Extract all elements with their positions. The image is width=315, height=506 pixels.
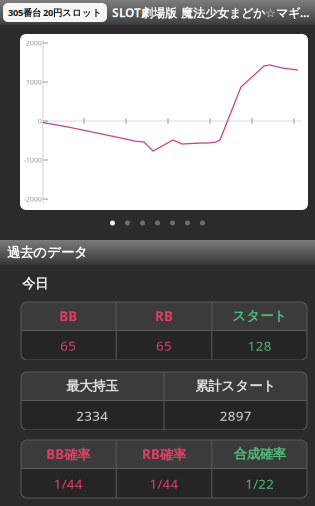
staticText: BB確率 xyxy=(46,445,90,463)
staticText: 1/44 xyxy=(149,475,178,492)
staticText: 1/44 xyxy=(54,475,83,492)
staticText: 128 xyxy=(248,337,272,354)
staticText: RB確率 xyxy=(142,445,186,463)
staticText: 65 xyxy=(60,337,76,354)
staticText: -1000 xyxy=(24,156,42,164)
staticText: 0 xyxy=(38,117,42,125)
staticText: BB xyxy=(59,307,77,325)
staticText: RB xyxy=(155,307,173,325)
staticText: 1/22 xyxy=(245,475,274,492)
staticText: 最大持玉 xyxy=(66,378,118,394)
staticText: スタート xyxy=(232,308,287,324)
button[interactable]: 305番台 20円スロット xyxy=(3,3,107,22)
staticText: 305番台 20円スロット xyxy=(8,6,102,19)
staticText: SLOT劇場版 魔法少女まどか☆マギカ[前編 xyxy=(112,4,315,20)
staticText: 2897 xyxy=(220,407,252,424)
staticText: 2000 xyxy=(26,39,42,47)
staticText: 過去のデータ xyxy=(7,244,88,261)
staticText: 今日 xyxy=(22,275,48,292)
staticText: 合成確率 xyxy=(234,446,286,462)
staticText: -2000 xyxy=(24,195,42,203)
staticText: 2334 xyxy=(76,407,108,424)
staticText: 65 xyxy=(156,337,172,354)
staticText: 累計スタート xyxy=(195,378,276,394)
staticText: 1000 xyxy=(26,78,42,86)
